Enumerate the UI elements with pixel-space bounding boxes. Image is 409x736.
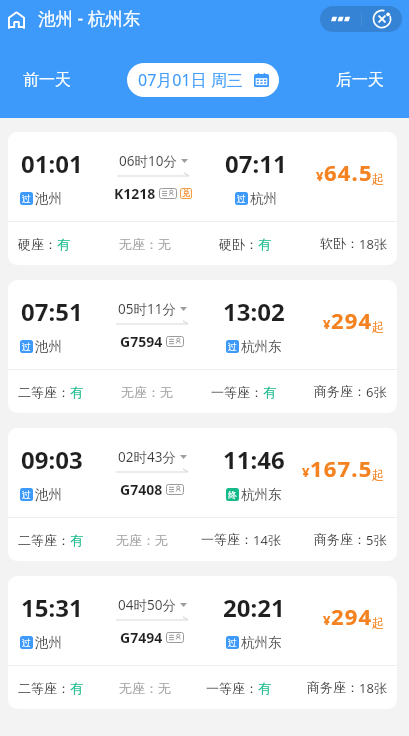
staticText: 06时10分 <box>119 152 177 170</box>
staticText: 5张 <box>366 531 387 549</box>
button[interactable]: Close mini program <box>362 6 401 32</box>
button[interactable]: 后一天 <box>327 63 393 97</box>
staticText: 07月01日 周三 <box>138 69 243 91</box>
button[interactable]: 07月01日 周三 <box>127 63 279 97</box>
staticText: G7594 <box>120 332 163 351</box>
staticText: 过 <box>22 193 31 204</box>
staticText: 过 <box>22 489 31 500</box>
button[interactable]: 09:03 <box>8 428 397 561</box>
staticText: 01:01 <box>21 147 83 180</box>
staticText: 07:51 <box>21 295 83 328</box>
staticText: 18张 <box>359 235 387 253</box>
staticText: ¥ <box>302 463 310 481</box>
staticText: 软卧： <box>320 235 359 251</box>
staticText: 无 <box>158 236 171 252</box>
button[interactable]: 07:51 <box>8 280 397 413</box>
staticText: 池州 <box>35 486 62 503</box>
staticText: 一等座： <box>211 384 263 400</box>
staticText: 硬卧： <box>219 236 258 252</box>
staticText: G7408 <box>120 480 163 499</box>
staticText: 64.5 <box>324 157 373 187</box>
button[interactable]: 15:31 <box>8 576 397 709</box>
staticText: 过 <box>22 637 31 648</box>
staticText: 167.5 <box>310 453 373 483</box>
staticText: 起 <box>372 319 384 334</box>
staticText: 硬座： <box>18 236 57 252</box>
button[interactable]: Home <box>8 11 25 28</box>
staticText: 池州 <box>35 190 62 207</box>
staticText: 无座： <box>121 384 160 400</box>
staticText: 二等座： <box>18 532 70 548</box>
button[interactable]: More options <box>320 6 361 32</box>
staticText: K1218 <box>114 184 156 203</box>
staticText: 杭州东 <box>241 634 282 651</box>
staticText: 杭州东 <box>241 486 282 503</box>
staticText: 无座： <box>119 236 158 252</box>
staticText: 13:02 <box>223 295 285 328</box>
button[interactable]: 01:01 <box>8 132 397 265</box>
button[interactable]: 前一天 <box>14 63 80 97</box>
staticText: 兑 <box>182 188 191 199</box>
staticText: ¥ <box>316 167 324 185</box>
staticText: 6张 <box>366 383 387 401</box>
staticText: 过 <box>237 193 246 204</box>
staticText: 09:03 <box>21 443 83 476</box>
staticText: 18张 <box>359 679 387 697</box>
staticText: 04时50分 <box>118 596 176 614</box>
staticText: 294 <box>331 305 373 335</box>
staticText: 05时11分 <box>118 300 176 318</box>
staticText: 过 <box>228 637 237 648</box>
staticText: 有 <box>57 236 70 252</box>
staticText: G7494 <box>120 628 163 647</box>
staticText: 二等座： <box>18 680 70 696</box>
staticText: 杭州东 <box>241 338 282 355</box>
staticText: 起 <box>372 467 384 482</box>
staticText: 池州 <box>35 338 62 355</box>
staticText: 14张 <box>253 531 281 549</box>
staticText: 一等座： <box>206 680 258 696</box>
staticText: 有 <box>70 680 83 696</box>
staticText: 池州 <box>35 634 62 651</box>
staticText: 商务座： <box>314 531 366 547</box>
staticText: 二等座： <box>18 384 70 400</box>
staticText: 池州 - 杭州东 <box>38 6 141 30</box>
staticText: 有 <box>70 532 83 548</box>
staticText: 过 <box>228 341 237 352</box>
staticText: 07:11 <box>225 147 287 180</box>
staticText: 无 <box>158 680 171 696</box>
staticText: ¥ <box>323 611 331 629</box>
staticText: 有 <box>263 384 276 400</box>
staticText: 有 <box>258 680 271 696</box>
staticText: 无 <box>155 532 168 548</box>
staticText: 杭州 <box>250 190 277 207</box>
staticText: 无座： <box>116 532 155 548</box>
staticText: 过 <box>22 341 31 352</box>
staticText: 有 <box>70 384 83 400</box>
staticText: 商务座： <box>314 383 366 399</box>
staticText: 294 <box>331 601 373 631</box>
staticText: 20:21 <box>223 591 285 624</box>
staticText: 无座： <box>119 680 158 696</box>
staticText: 起 <box>372 171 384 186</box>
staticText: 11:46 <box>223 443 285 476</box>
staticText: 有 <box>258 236 271 252</box>
staticText: 商务座： <box>307 679 359 695</box>
staticText: 一等座： <box>201 531 253 547</box>
staticText: ¥ <box>323 315 331 333</box>
staticText: 终 <box>228 489 237 500</box>
staticText: 起 <box>372 615 384 630</box>
staticText: 02时43分 <box>118 448 176 466</box>
staticText: 15:31 <box>21 591 83 624</box>
staticText: 无 <box>160 384 173 400</box>
